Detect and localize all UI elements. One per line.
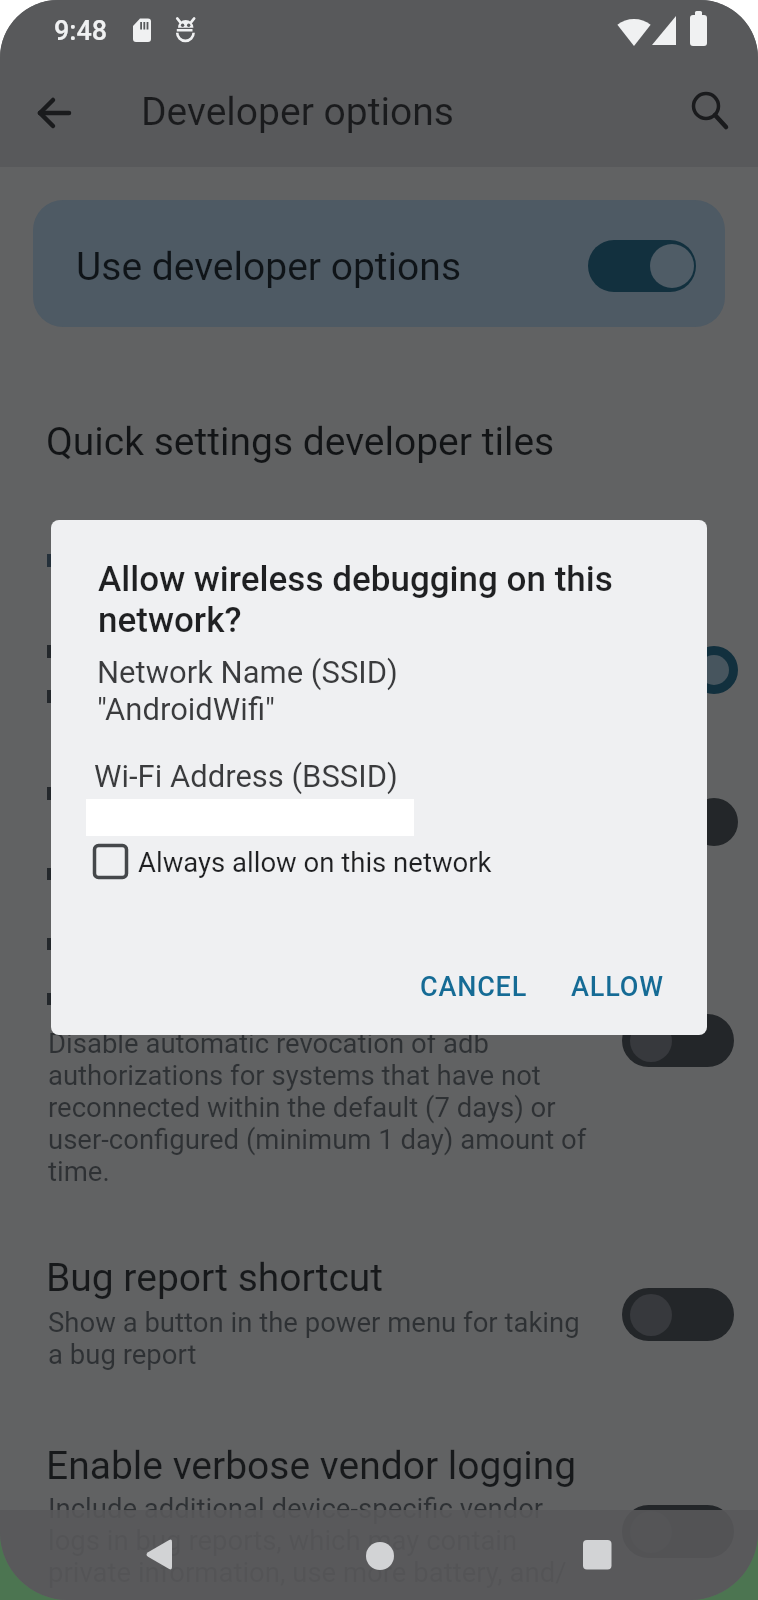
button[interactable]: Use developer options xyxy=(33,200,725,327)
staticText: Allow wireless debugging on this xyxy=(98,559,613,600)
staticText: logs in bug reports, which may contain xyxy=(48,1524,518,1556)
button[interactable] xyxy=(352,1528,408,1584)
staticText: authorizations for systems that have not xyxy=(48,1059,541,1091)
staticText: Disable automatic revocation of adb xyxy=(48,1027,489,1059)
staticText: network? xyxy=(98,600,242,641)
staticText: Include additional device-specific vendo… xyxy=(48,1492,544,1524)
staticText: a bug report xyxy=(48,1338,197,1370)
staticText: time. xyxy=(48,1155,110,1187)
button[interactable] xyxy=(622,1014,734,1067)
staticText: Developer options xyxy=(141,89,454,135)
staticText: Show a button in the power menu for taki… xyxy=(48,1306,580,1338)
button[interactable] xyxy=(685,85,733,133)
staticText: private information, use more battery, a… xyxy=(48,1556,567,1588)
staticText: Wi-Fi Address (BSSID) xyxy=(94,758,398,794)
staticText: ALLOW xyxy=(571,971,664,1003)
staticText: Quick settings developer tiles xyxy=(46,419,555,465)
button[interactable] xyxy=(622,1505,734,1558)
staticText: 9:48 xyxy=(54,15,108,47)
button[interactable] xyxy=(622,1288,734,1341)
staticText: "AndroidWifi" xyxy=(97,691,275,727)
button[interactable] xyxy=(140,1534,180,1576)
button[interactable] xyxy=(80,832,500,890)
staticText: Use developer options xyxy=(76,244,462,290)
staticText: Bug report shortcut xyxy=(46,1255,384,1301)
button[interactable] xyxy=(32,91,76,135)
button[interactable] xyxy=(405,950,540,1016)
staticText: CANCEL xyxy=(420,971,528,1003)
staticText: Always allow on this network xyxy=(138,846,492,878)
button[interactable] xyxy=(568,1524,624,1580)
staticText: Enable verbose vendor logging xyxy=(46,1443,577,1489)
button[interactable] xyxy=(556,950,676,1016)
staticText: Network Name (SSID) xyxy=(97,654,398,690)
staticText: user-configured (minimum 1 day) amount o… xyxy=(48,1123,587,1155)
staticText: reconnected within the default (7 days) … xyxy=(48,1091,556,1123)
